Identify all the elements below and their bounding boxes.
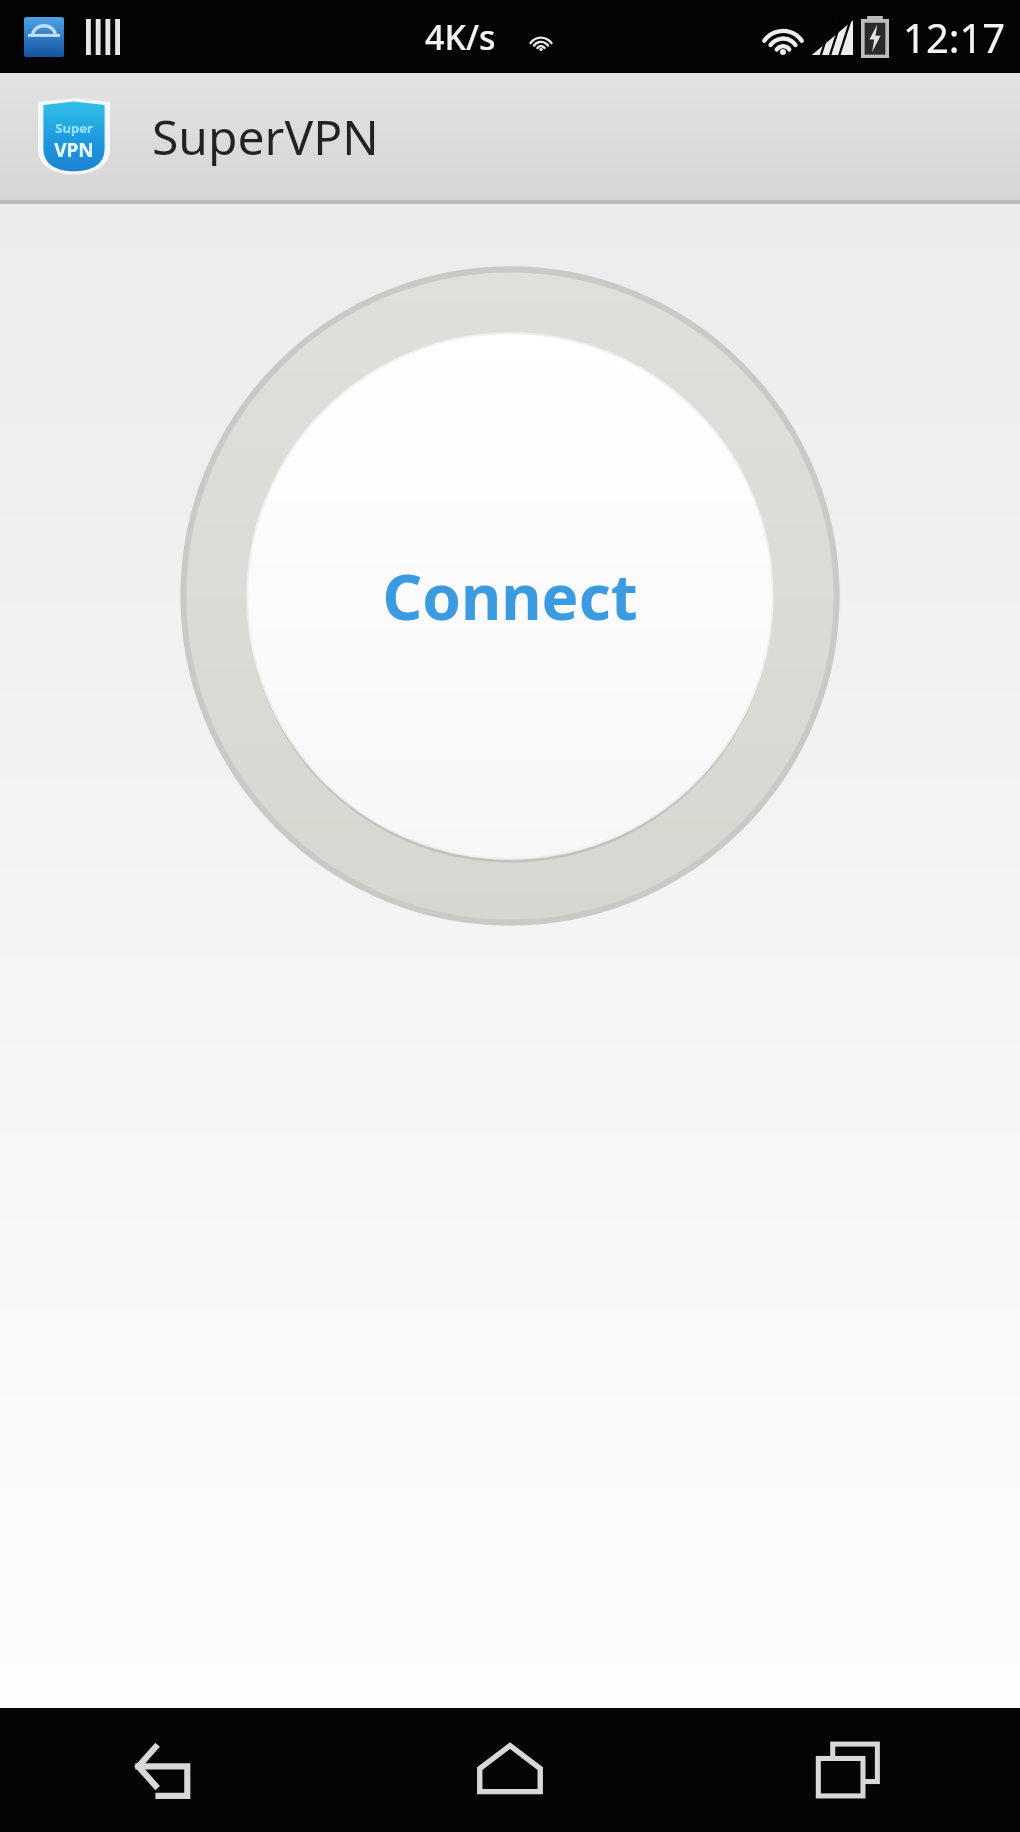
staticText: Connect [382,554,638,638]
button[interactable]: Back [0,1708,340,1832]
staticText: SuperVPN [152,104,379,169]
staticText: Super [55,119,93,137]
button[interactable]: Recents [680,1708,1020,1832]
staticText: 4K/s [425,14,496,60]
staticText: 12:17 [903,10,1006,64]
button[interactable]: Home [340,1708,680,1832]
staticText: VPN [54,137,94,163]
button[interactable]: Connect [175,261,845,931]
